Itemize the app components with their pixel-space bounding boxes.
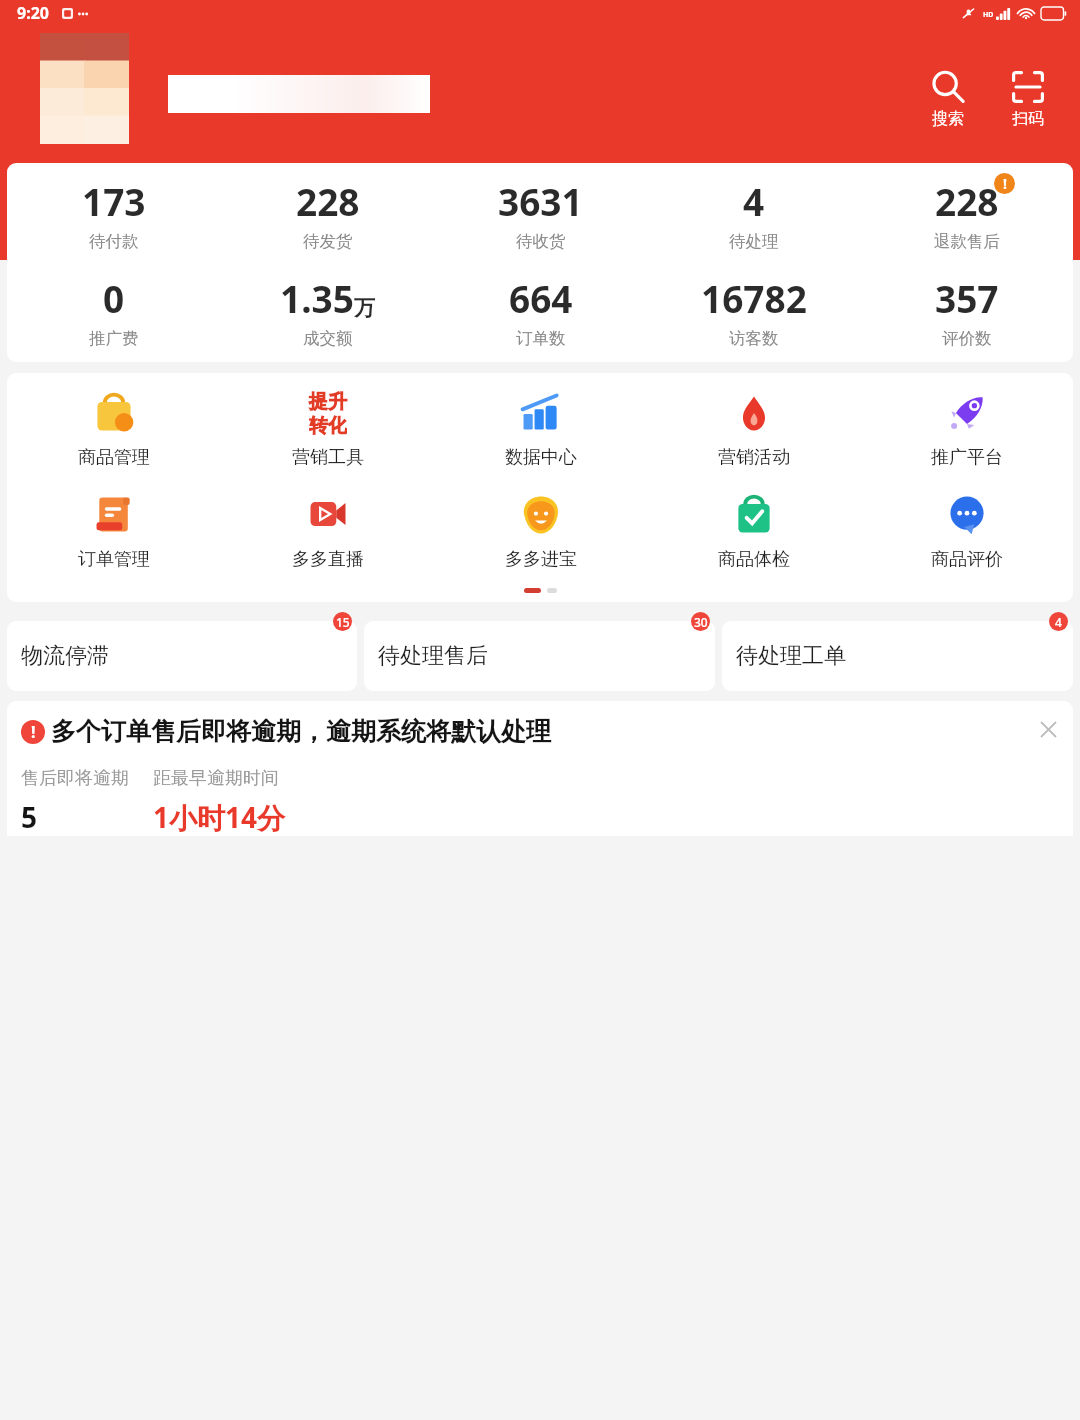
button[interactable]: 4 xyxy=(647,174,860,254)
button[interactable]: 关闭 xyxy=(1035,716,1061,742)
staticText: 推广平台 xyxy=(931,446,1003,469)
button[interactable]: 0 xyxy=(7,271,221,351)
button[interactable]: 商品体检 xyxy=(647,489,860,573)
staticText: 664 xyxy=(509,273,573,323)
button[interactable]: 商品管理 xyxy=(7,387,221,471)
staticText: 多多进宝 xyxy=(505,548,577,571)
staticText: 4 xyxy=(743,176,765,226)
staticText: 1小时14分 xyxy=(153,798,286,836)
staticText: 待付款 xyxy=(89,231,139,252)
staticText: 营销活动 xyxy=(718,446,790,469)
button[interactable]: 待处理售后 xyxy=(364,621,715,691)
button[interactable]: 待处理工单 xyxy=(722,621,1073,691)
staticText: 推广费 xyxy=(89,328,139,349)
staticText: ! xyxy=(31,721,36,743)
staticText: 商品管理 xyxy=(78,446,150,469)
staticText: 扫码 xyxy=(1012,109,1044,129)
button[interactable]: 228 xyxy=(860,174,1073,254)
button[interactable]: 16782 xyxy=(647,271,860,351)
button[interactable]: 多多直播 xyxy=(221,489,434,573)
staticText: 访客数 xyxy=(729,328,779,349)
staticText: 退款售后 xyxy=(934,231,1000,252)
staticText: 多多直播 xyxy=(292,548,364,571)
staticText: 商品体检 xyxy=(718,548,790,571)
staticText: 5 xyxy=(21,798,38,836)
button[interactable]: ! xyxy=(7,701,1073,836)
button[interactable]: 商品评价 xyxy=(860,489,1073,573)
staticText: 物流停滞 xyxy=(21,642,109,670)
button[interactable]: 3631 xyxy=(434,174,647,254)
staticText: 228 xyxy=(296,176,360,226)
staticText: 多个订单售后即将逾期，逾期系统将默认处理 xyxy=(51,716,1035,747)
button[interactable]: 228 xyxy=(221,174,434,254)
staticText: 待处理售后 xyxy=(378,642,488,670)
button[interactable]: 173 xyxy=(7,174,221,254)
button[interactable]: 提升 xyxy=(221,387,434,471)
staticText: 评价数 xyxy=(942,328,992,349)
staticText: 0 xyxy=(103,273,125,323)
staticText: 订单管理 xyxy=(78,548,150,571)
staticText: 订单数 xyxy=(516,328,566,349)
button[interactable]: 订单管理 xyxy=(7,489,221,573)
staticText: 15 xyxy=(336,614,350,630)
staticText: 数据中心 xyxy=(505,446,577,469)
staticText: 商品评价 xyxy=(931,548,1003,571)
button[interactable]: 物流停滞 xyxy=(7,621,357,691)
staticText: 提升 xyxy=(309,390,347,414)
staticText: 营销工具 xyxy=(292,446,364,469)
staticText: 待处理工单 xyxy=(736,642,846,670)
button[interactable]: 搜索 xyxy=(924,67,972,131)
staticText: 3631 xyxy=(498,176,583,226)
button[interactable]: 扫码 xyxy=(1004,67,1052,131)
button[interactable]: 营销活动 xyxy=(647,387,860,471)
staticText: HD xyxy=(983,10,994,20)
staticText: 9:20 xyxy=(17,2,49,24)
staticText: 售后即将逾期 xyxy=(21,767,129,790)
staticText: 16782 xyxy=(701,273,807,323)
staticText: 待发货 xyxy=(303,231,353,252)
staticText: 搜索 xyxy=(932,109,964,129)
button[interactable]: 多多进宝 xyxy=(434,489,647,573)
staticText: 1.35 xyxy=(280,273,354,323)
staticText: 距最早逾期时间 xyxy=(153,767,279,790)
staticText: 成交额 xyxy=(303,328,353,349)
staticText: 转化 xyxy=(309,414,347,436)
button[interactable]: 数据中心 xyxy=(434,387,647,471)
staticText: 待收货 xyxy=(516,231,566,252)
staticText: ! xyxy=(1003,174,1007,193)
staticText: 357 xyxy=(935,273,999,323)
button[interactable]: 推广平台 xyxy=(860,387,1073,471)
staticText: 173 xyxy=(82,176,146,226)
staticText: 30 xyxy=(694,614,708,630)
staticText: 待处理 xyxy=(729,231,779,252)
button[interactable]: 664 xyxy=(434,271,647,351)
staticText: 4 xyxy=(1055,614,1062,630)
staticText: 228 xyxy=(935,176,999,226)
staticText: 万 xyxy=(354,295,375,321)
button[interactable]: 357 xyxy=(860,271,1073,351)
button[interactable]: 1.35 xyxy=(221,271,434,351)
